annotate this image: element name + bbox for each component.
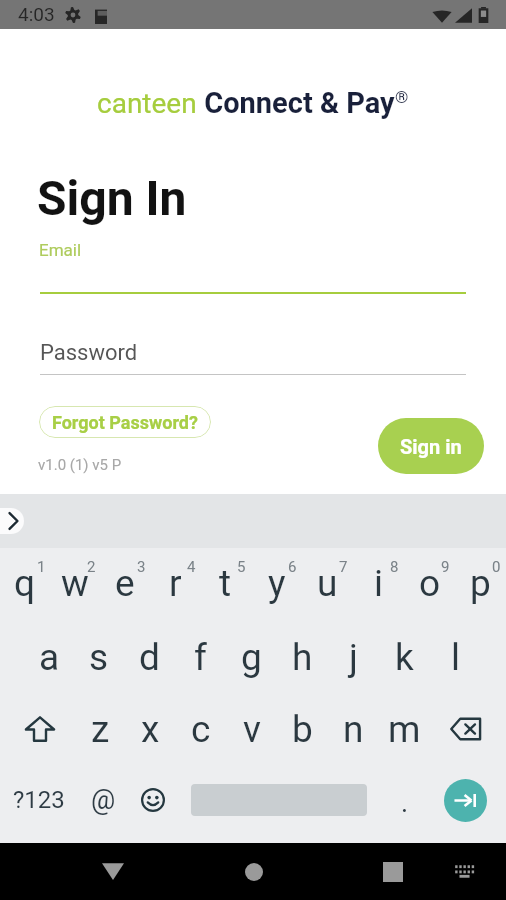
staticText: y: [268, 562, 286, 605]
staticText: Password: [40, 340, 138, 366]
staticText: f: [194, 636, 207, 679]
staticText: 0: [492, 558, 501, 576]
staticText: ®: [395, 87, 409, 107]
staticText: d: [139, 636, 160, 679]
staticText: q: [14, 562, 36, 605]
staticText: Forgot Password?: [52, 412, 198, 433]
button[interactable]: Backspace: [430, 706, 506, 752]
button[interactable]: j: [328, 634, 379, 680]
staticText: k: [395, 636, 414, 679]
staticText: .: [401, 787, 409, 819]
button[interactable]: 0: [455, 548, 506, 604]
button[interactable]: Shift: [0, 706, 75, 752]
staticText: t: [219, 562, 232, 605]
staticText: h: [292, 636, 313, 679]
button[interactable]: k: [379, 634, 430, 680]
staticText: g: [241, 636, 262, 679]
staticText: 6: [288, 558, 297, 576]
button[interactable]: a: [24, 634, 74, 680]
staticText: Connect & Pay: [197, 86, 395, 120]
button[interactable]: Switch keyboard: [434, 843, 494, 900]
staticText: r: [169, 562, 182, 605]
staticText: 7: [339, 558, 348, 576]
button[interactable]: h: [277, 634, 328, 680]
button[interactable]: Emoji: [129, 774, 180, 826]
staticText: v1.0 (1) v5 P: [38, 456, 122, 474]
staticText: Sign In: [37, 170, 187, 226]
button[interactable]: 9: [404, 548, 455, 604]
staticText: 4:03: [18, 3, 55, 25]
button[interactable]: Forgot Password?: [39, 406, 211, 438]
staticText: 9: [441, 558, 450, 576]
staticText: e: [115, 562, 135, 605]
staticText: l: [451, 636, 460, 679]
button[interactable]: x: [125, 706, 175, 752]
staticText: canteen: [97, 87, 197, 120]
button[interactable]: 3: [100, 548, 150, 604]
button[interactable]: c: [175, 706, 226, 752]
staticText: j: [349, 636, 358, 679]
button[interactable]: l: [430, 634, 481, 680]
button[interactable]: s: [74, 634, 124, 680]
button[interactable]: 1: [0, 548, 50, 604]
button[interactable]: 2: [50, 548, 100, 604]
button[interactable]: ?123: [0, 774, 78, 826]
button[interactable]: Sign in: [378, 418, 484, 474]
staticText: Email: [39, 240, 82, 260]
staticText: c: [191, 708, 211, 751]
staticText: b: [292, 708, 313, 751]
button[interactable]: 6: [251, 548, 302, 604]
button[interactable]: Home: [214, 843, 294, 900]
staticText: n: [343, 708, 364, 751]
staticText: s: [89, 636, 109, 679]
staticText: a: [39, 636, 60, 679]
button[interactable]: Recents: [353, 843, 433, 900]
staticText: p: [470, 562, 491, 605]
button[interactable]: Space: [180, 774, 377, 826]
staticText: w: [61, 562, 89, 605]
staticText: 4: [187, 558, 196, 576]
staticText: 2: [87, 558, 96, 576]
staticText: 1: [37, 558, 46, 576]
staticText: m: [388, 708, 421, 751]
button[interactable]: z: [75, 706, 125, 752]
staticText: z: [91, 708, 110, 751]
button[interactable]: 5: [200, 548, 251, 604]
staticText: v: [243, 708, 261, 751]
button[interactable]: n: [328, 706, 379, 752]
button[interactable]: .: [377, 774, 425, 826]
staticText: Sign in: [400, 435, 462, 458]
button[interactable]: Back: [73, 843, 153, 900]
button[interactable]: g: [226, 634, 277, 680]
staticText: i: [374, 562, 383, 605]
button[interactable]: d: [124, 634, 175, 680]
button[interactable]: @: [78, 774, 129, 826]
staticText: 8: [390, 558, 399, 576]
staticText: 5: [237, 558, 246, 576]
staticText: @: [91, 784, 116, 816]
button[interactable]: Show suggestions: [0, 508, 24, 534]
button[interactable]: f: [175, 634, 226, 680]
button[interactable]: 8: [353, 548, 404, 604]
staticText: 3: [137, 558, 146, 576]
staticText: ?123: [13, 786, 65, 814]
button[interactable]: 4: [150, 548, 200, 604]
staticText: x: [141, 708, 160, 751]
button[interactable]: 7: [302, 548, 353, 604]
button[interactable]: Enter: [444, 779, 487, 822]
staticText: u: [317, 562, 338, 605]
button[interactable]: m: [379, 706, 430, 752]
button[interactable]: v: [226, 706, 277, 752]
button[interactable]: b: [277, 706, 328, 752]
staticText: o: [419, 562, 441, 605]
